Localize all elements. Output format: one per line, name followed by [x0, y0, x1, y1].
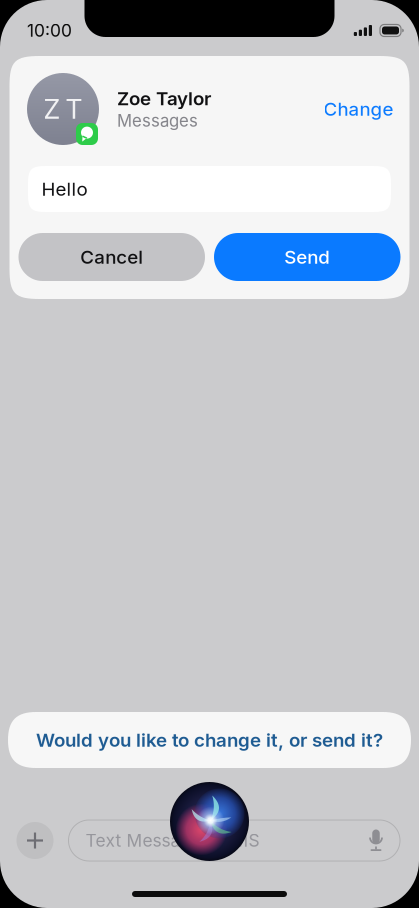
button[interactable]: Add attachment	[16, 822, 53, 859]
staticText: Text Message • SMS	[85, 830, 259, 851]
button[interactable]: Change	[323, 98, 393, 120]
staticText: Z T	[43, 93, 82, 125]
button[interactable]: Dictate	[363, 827, 400, 853]
button[interactable]: Cancel	[18, 233, 205, 281]
staticText: Would you like to change it, or send it?	[36, 729, 383, 751]
staticText: Cancel	[80, 246, 143, 268]
staticText: Send	[284, 246, 330, 268]
staticText: 10:00	[27, 20, 72, 41]
staticText: Change	[323, 98, 393, 120]
staticText: Messages	[117, 111, 198, 131]
staticText: Zoe Taylor	[117, 87, 211, 110]
staticText: Hello	[41, 178, 87, 200]
button[interactable]: Send	[214, 233, 400, 281]
